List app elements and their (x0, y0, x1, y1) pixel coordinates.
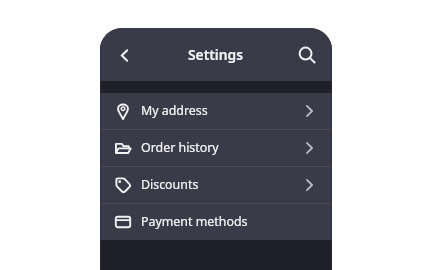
button[interactable]: Payment methods (100, 204, 332, 240)
button[interactable]: My address (100, 93, 332, 129)
staticText: Payment methods (141, 213, 248, 230)
staticText: Order history (141, 139, 219, 156)
button[interactable]: Discounts (100, 167, 332, 203)
staticText: Discounts (141, 176, 199, 193)
button[interactable]: Search (293, 41, 321, 69)
staticText: Settings (188, 45, 244, 64)
button[interactable]: Back (110, 41, 138, 69)
button[interactable]: Order history (100, 130, 332, 166)
staticText: My address (141, 102, 208, 119)
